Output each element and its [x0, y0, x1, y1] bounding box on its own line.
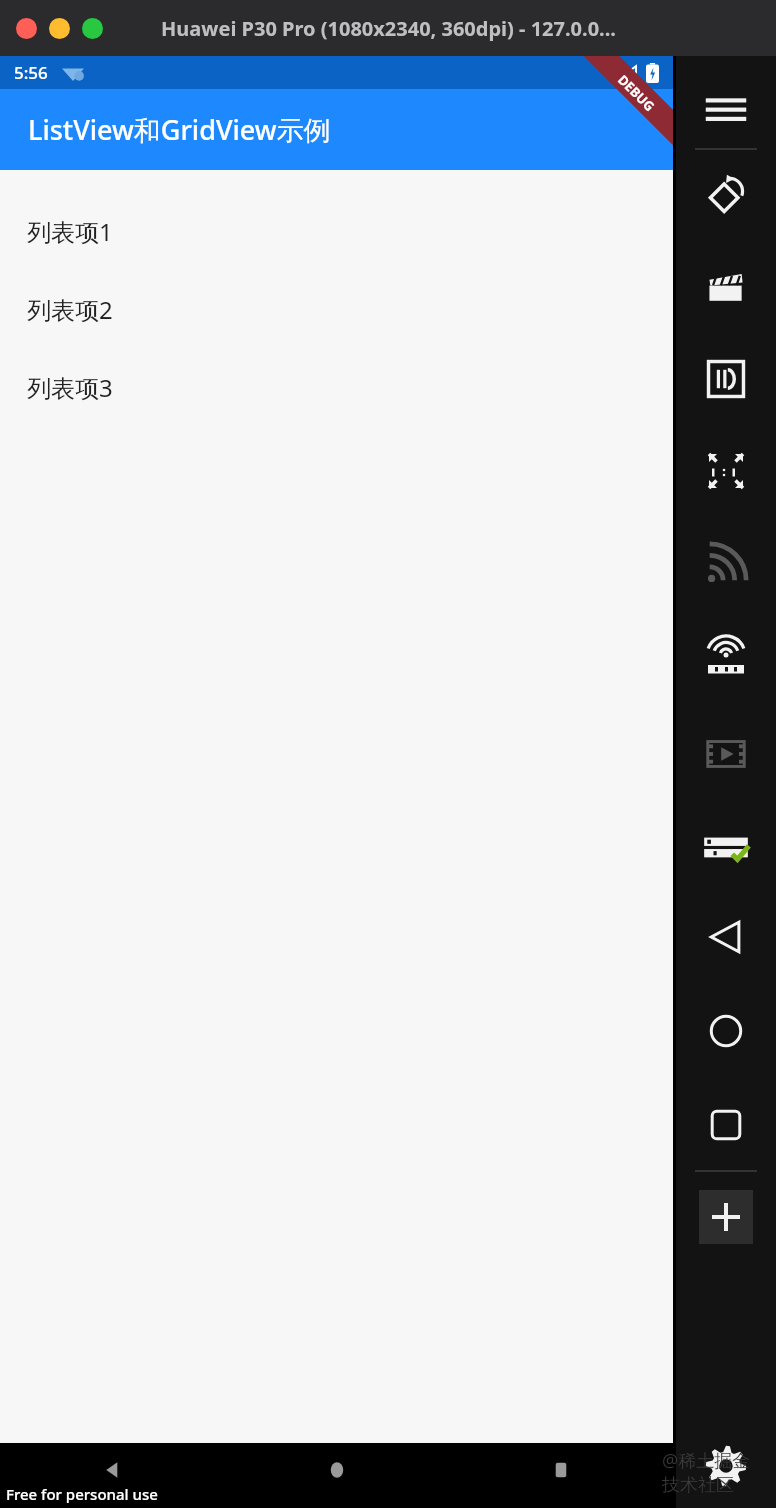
button[interactable]: Scale 1:1	[701, 446, 751, 496]
button[interactable]: 列表项3	[0, 348, 673, 426]
staticText: ListView和GridView示例	[28, 111, 331, 148]
button[interactable]: Play video	[702, 730, 750, 778]
staticText: Huawei P30 Pro (1080x2340, 360dpi) - 127…	[161, 15, 616, 42]
button[interactable]: Device ID	[703, 356, 749, 402]
button[interactable]: Open GApps	[700, 822, 752, 874]
staticText: 列表项2	[27, 293, 113, 326]
button[interactable]: Recents	[703, 1102, 749, 1148]
button[interactable]: Rotate	[703, 172, 749, 218]
button[interactable]: Settings	[702, 1442, 750, 1490]
button[interactable]: Home	[703, 1008, 749, 1054]
staticText: DEBUG	[614, 71, 659, 115]
button[interactable]: Zoom	[82, 18, 103, 39]
button[interactable]: Minimize	[49, 18, 70, 39]
staticText: @稀土掘金技术社区	[662, 1448, 762, 1496]
button[interactable]: Signal	[702, 540, 750, 588]
button[interactable]: Close	[16, 18, 37, 39]
button[interactable]: ListView和GridView示例	[0, 89, 673, 170]
button[interactable]: Home	[225, 1443, 449, 1508]
staticText: Free for personal use	[6, 1484, 158, 1504]
button[interactable]: Back	[703, 914, 749, 960]
button[interactable]: 列表项2	[0, 270, 673, 348]
button[interactable]: Menu	[704, 86, 748, 130]
staticText: 5:56	[14, 61, 48, 84]
button[interactable]: Recents	[449, 1443, 673, 1508]
button[interactable]: Add	[699, 1190, 753, 1244]
staticText: 列表项3	[27, 371, 113, 404]
button[interactable]: 列表项1	[0, 192, 673, 270]
staticText: 列表项1	[27, 215, 113, 248]
button[interactable]: Back	[0, 1443, 225, 1508]
button[interactable]: GPS	[701, 636, 751, 686]
button[interactable]: Record screen	[703, 264, 749, 310]
